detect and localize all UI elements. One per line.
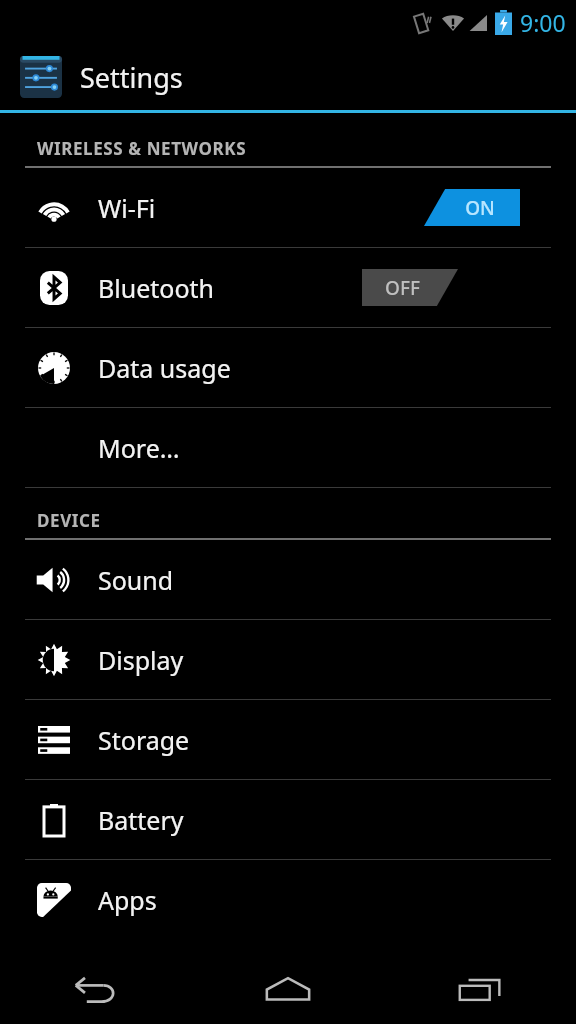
staticText: Display [98,643,184,677]
button[interactable]: OFF [362,269,458,306]
other: Data usage [38,352,70,384]
button[interactable]: Storage [0,700,576,779]
button[interactable]: Sound [0,540,576,619]
button[interactable]: Back [0,954,192,1024]
staticText: Data usage [98,351,231,385]
other: Bluetooth [40,271,68,305]
other: Display [37,643,71,677]
other: Sound [36,566,72,594]
staticText: Battery [98,803,184,837]
button[interactable]: Wi-Fi [0,168,576,247]
button[interactable]: Battery [0,780,576,859]
staticText: WIRELESS & NETWORKS [37,137,247,160]
staticText: Bluetooth [98,271,215,305]
staticText: Settings [80,59,183,96]
button[interactable]: Apps [0,860,576,939]
staticText: Apps [98,883,157,917]
other: Battery [44,804,64,836]
staticText: DEVICE [37,509,101,532]
staticText: ON [465,195,495,221]
staticText: Sound [98,563,174,597]
button[interactable]: Recent apps [384,954,576,1024]
button[interactable]: ON [424,189,520,226]
other: Apps [37,883,71,917]
button[interactable]: Home [192,954,384,1024]
button[interactable]: Data usage [0,328,576,407]
button[interactable]: More… [0,408,576,487]
other: Storage [38,726,70,754]
staticText: Wi-Fi [98,191,156,225]
button[interactable]: Bluetooth [0,248,576,327]
other: Wi-Fi [37,195,71,221]
staticText: OFF [385,275,420,301]
staticText: 9:00 [520,7,566,38]
staticText: Storage [98,723,190,757]
button[interactable]: Display [0,620,576,699]
staticText: More… [98,431,180,465]
